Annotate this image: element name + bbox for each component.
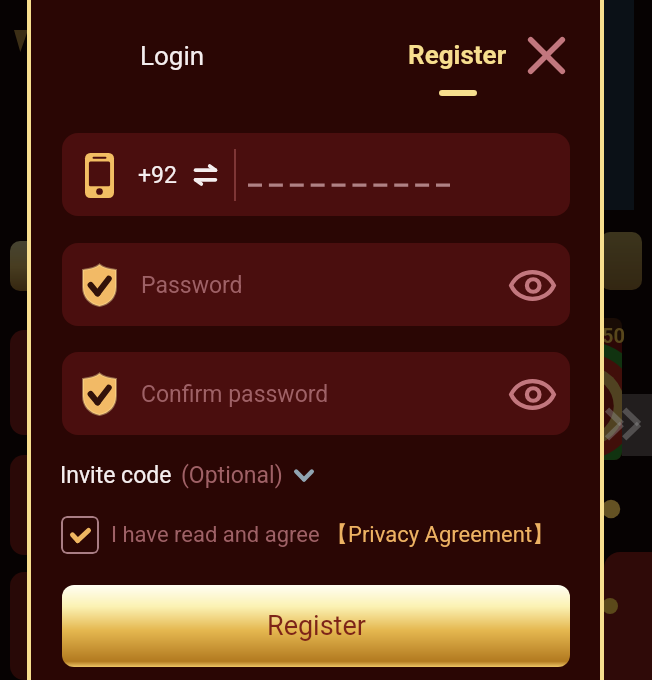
staticText: Password xyxy=(141,272,243,299)
staticText: (Optional) xyxy=(181,462,283,489)
button[interactable]: Close xyxy=(519,28,574,83)
button[interactable]: Show password xyxy=(506,259,558,311)
button[interactable]: Register xyxy=(62,585,570,667)
staticText: Invite code xyxy=(60,462,172,489)
button[interactable]: Show password xyxy=(506,368,558,420)
staticText: I have read and agree xyxy=(111,522,326,548)
staticText: +92 xyxy=(138,162,177,189)
button[interactable]: Register xyxy=(400,32,515,104)
staticText: Login xyxy=(140,41,205,71)
staticText: Confirm password xyxy=(141,381,329,408)
staticText: Register xyxy=(267,610,366,642)
button[interactable]: Invite code xyxy=(52,456,322,495)
button[interactable]: Agree to privacy agreement xyxy=(61,516,99,554)
staticText: Register xyxy=(408,40,507,70)
staticText: 【Privacy Agreement】 xyxy=(326,521,555,549)
button[interactable]: Login xyxy=(132,33,213,79)
staticText: 50 xyxy=(602,324,625,347)
